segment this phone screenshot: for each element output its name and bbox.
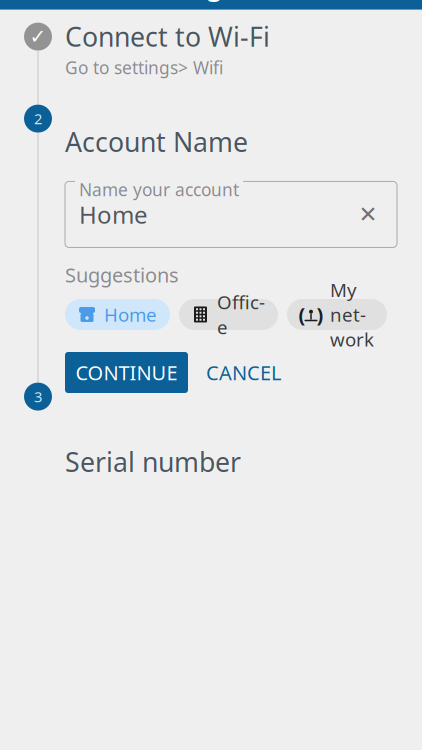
staticText: My network	[330, 277, 374, 352]
button[interactable]: CONTINUE	[65, 352, 188, 393]
staticText: 2	[34, 109, 42, 128]
staticText: Serial number	[65, 444, 241, 479]
button[interactable]: Office	[179, 299, 278, 330]
staticText: Account Name	[65, 124, 248, 159]
staticText: Go to settings> Wifi	[65, 56, 223, 79]
staticText: ✕	[358, 202, 377, 227]
staticText: (	[298, 301, 305, 328]
button[interactable]: Clear text	[353, 199, 383, 229]
staticText: Suggestions	[65, 261, 179, 288]
staticText: CONTINUE	[75, 359, 177, 386]
staticText: Office	[217, 290, 265, 339]
staticText: CANCEL	[206, 359, 281, 386]
button[interactable]: (	[287, 299, 387, 330]
staticText: Home	[104, 302, 157, 327]
staticText: Home	[79, 198, 148, 230]
staticText: Login	[172, 0, 249, 3]
staticText: ✓	[29, 25, 46, 48]
staticText: )	[316, 301, 323, 328]
staticText: Name your account	[79, 178, 239, 201]
button[interactable]: CANCEL	[188, 352, 299, 393]
button[interactable]: Home	[65, 299, 170, 330]
staticText: ‹	[20, 0, 34, 14]
staticText: 3	[34, 387, 42, 406]
staticText: Connect to Wi-Fi	[65, 19, 270, 54]
button[interactable]: Back	[0, 0, 54, 10]
